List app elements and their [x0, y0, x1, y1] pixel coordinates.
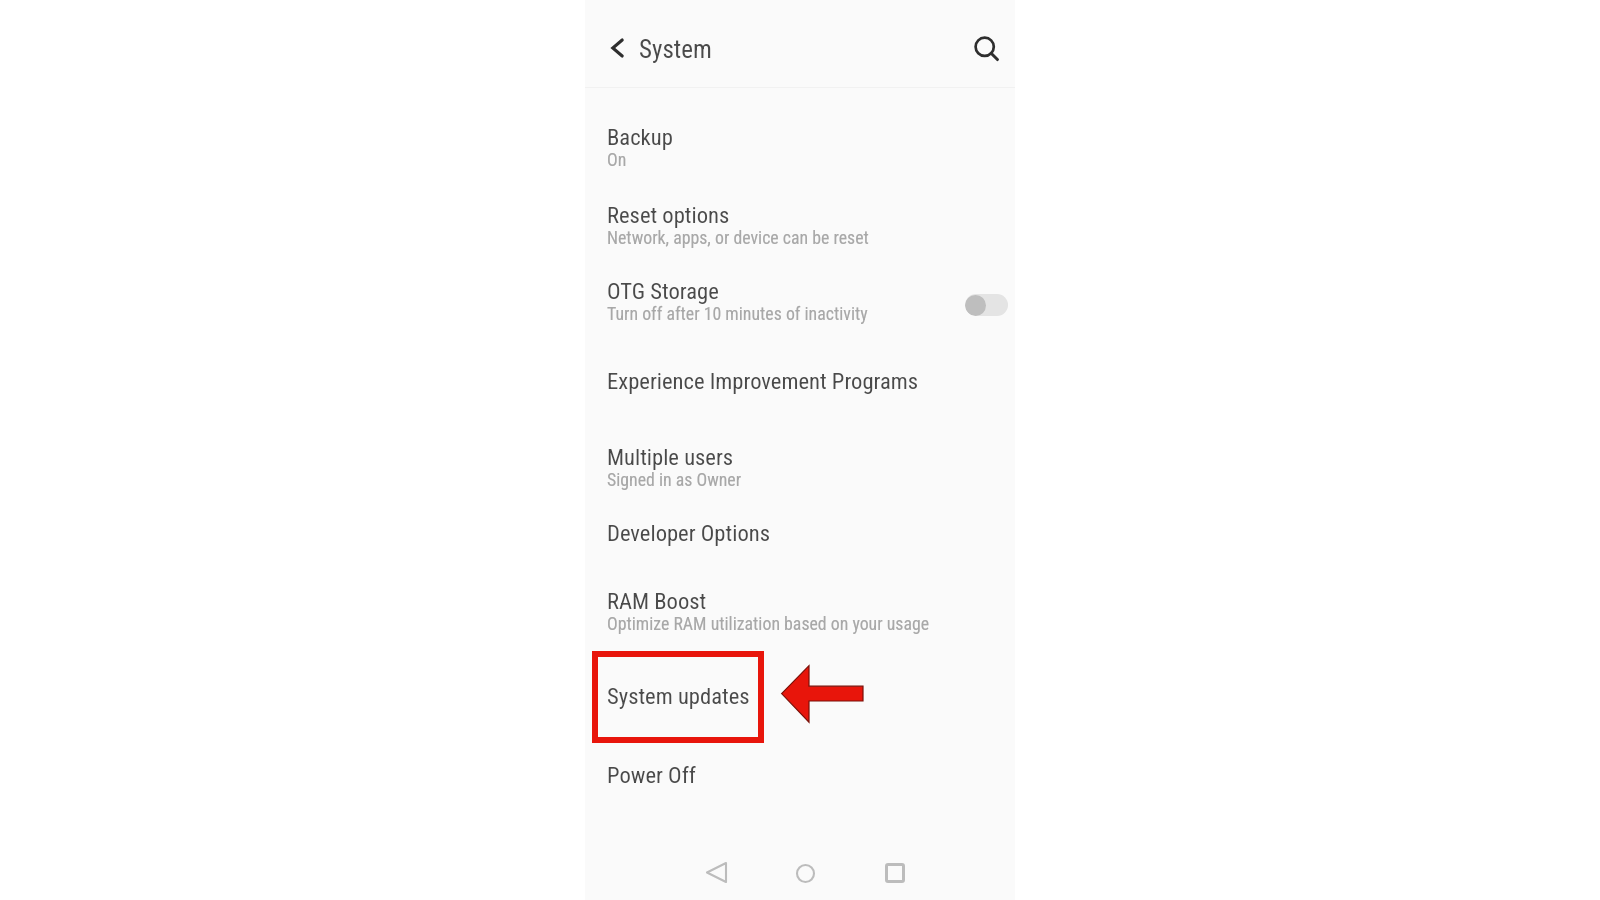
- button[interactable]: Search: [970, 34, 1006, 70]
- button[interactable]: Backup: [585, 107, 1015, 179]
- button[interactable]: OTG Storage: [585, 261, 1015, 333]
- button[interactable]: System updates: [585, 666, 1015, 710]
- button[interactable]: OTG Storage switch, off: [965, 294, 1008, 316]
- button[interactable]: Experience Improvement Programs: [585, 351, 1015, 395]
- button[interactable]: Home: [783, 851, 829, 897]
- staticText: Network, apps, or device can be reset: [607, 227, 869, 248]
- button[interactable]: Recent apps: [872, 850, 918, 896]
- staticText: Experience Improvement Programs: [607, 368, 919, 394]
- staticText: Backup: [607, 124, 673, 150]
- button[interactable]: Back: [694, 850, 740, 896]
- button[interactable]: Power Off: [585, 745, 1015, 789]
- staticText: Multiple users: [607, 444, 734, 470]
- staticText: Power Off: [607, 762, 696, 788]
- button[interactable]: Reset options: [585, 185, 1015, 257]
- button[interactable]: Multiple users: [585, 427, 1015, 499]
- staticText: Reset options: [607, 202, 730, 228]
- staticText: Turn off after 10 minutes of inactivity: [607, 303, 868, 324]
- staticText: Developer Options: [607, 520, 770, 546]
- button[interactable]: Navigate up: [600, 31, 634, 65]
- staticText: System: [639, 35, 712, 64]
- button[interactable]: Developer Options: [585, 503, 1015, 547]
- staticText: Optimize RAM utilization based on your u…: [607, 613, 930, 634]
- staticText: System updates: [607, 683, 750, 709]
- staticText: On: [607, 149, 627, 170]
- staticText: Signed in as Owner: [607, 469, 742, 490]
- staticText: OTG Storage: [607, 278, 719, 304]
- staticText: RAM Boost: [607, 588, 707, 614]
- button[interactable]: RAM Boost: [585, 571, 1015, 643]
